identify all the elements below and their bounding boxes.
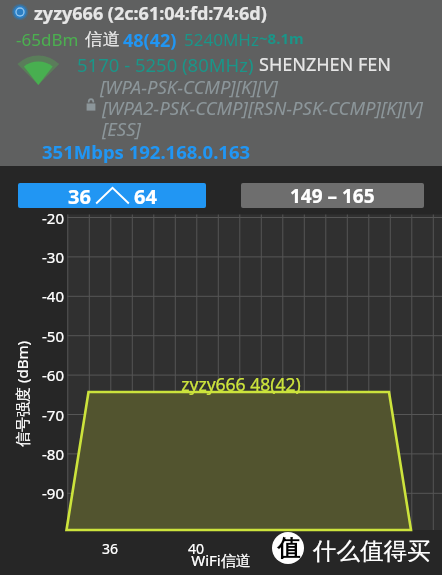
staticText: -40 — [0, 286, 64, 306]
staticText: -60 — [0, 365, 64, 385]
staticText: 信号强度 (dBm) — [12, 341, 32, 447]
staticText: -20 — [0, 208, 64, 228]
staticText: -50 — [0, 326, 64, 346]
staticText: -65dBm — [16, 28, 79, 51]
staticText: 5240MHz — [184, 28, 259, 51]
staticText: -30 — [0, 247, 64, 267]
staticText: 5170 - 5250 (80MHz) — [77, 52, 254, 77]
staticText: [WPA2-PSK-CCMP][RSN-PSK-CCMP][K][V] — [102, 95, 423, 120]
staticText: 40 — [166, 539, 226, 558]
staticText: WiFi信道 — [161, 550, 281, 570]
button[interactable]: 149 – 165 — [241, 183, 424, 208]
staticText: 信道 — [85, 28, 120, 50]
button[interactable]: 36 — [18, 183, 206, 208]
staticText: [WPA-PSK-CCMP][K][V] — [100, 74, 278, 99]
staticText: 48(42) — [123, 28, 177, 53]
staticText: 值 — [277, 534, 300, 563]
staticText: -90 — [0, 483, 64, 503]
staticText: [ESS] — [102, 116, 141, 141]
other: Access point details — [12, 4, 28, 20]
staticText: zyzy666 (2c:61:04:fd:74:6d) — [34, 1, 267, 26]
staticText: -70 — [0, 405, 64, 425]
button[interactable]: Access point details — [0, 0, 442, 166]
staticText: 351Mbps 192.168.0.163 — [42, 139, 251, 164]
staticText: 什么值得买 — [313, 536, 431, 566]
staticText: 36 — [68, 183, 91, 208]
staticText: 149 – 165 — [290, 183, 375, 208]
staticText: zyzy666 48(42) — [141, 372, 341, 396]
staticText: SHENZHEN FEN — [259, 52, 391, 77]
staticText: 36 — [80, 539, 140, 558]
staticText: -80 — [0, 444, 64, 464]
staticText: 64 — [134, 183, 157, 208]
staticText: ~8.1m — [259, 28, 304, 48]
